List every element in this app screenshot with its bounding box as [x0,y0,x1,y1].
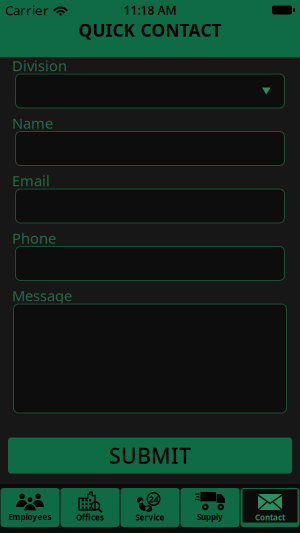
staticText: Division [12,56,67,75]
staticText: Carrier [5,1,49,19]
staticText: 11:18 AM [123,2,176,18]
button[interactable]: Division [0,72,300,108]
staticText: Email [12,171,50,190]
button[interactable]: Employees [0,488,60,527]
button[interactable]: Email [0,187,300,223]
staticText: Supply [197,512,223,522]
button[interactable]: 24 [120,488,180,527]
staticText: Contact [255,512,285,523]
staticText: Employees [8,512,51,522]
staticText: Service [135,512,164,523]
button[interactable]: Name [0,130,300,166]
staticText: Phone [12,228,56,248]
button[interactable]: Message [0,302,300,413]
button[interactable]: Supply [180,488,240,527]
button[interactable]: SUBMIT [8,437,292,473]
staticText: Name [12,113,53,133]
button[interactable]: Phone [0,245,300,281]
button[interactable]: Offices [60,488,120,527]
staticText: 24 [148,493,158,505]
button[interactable]: Contact [240,488,300,527]
staticText: SUBMIT [109,441,191,470]
staticText: Offices [76,512,104,523]
staticText: Message [12,286,72,305]
staticText: QUICK CONTACT [78,18,221,41]
